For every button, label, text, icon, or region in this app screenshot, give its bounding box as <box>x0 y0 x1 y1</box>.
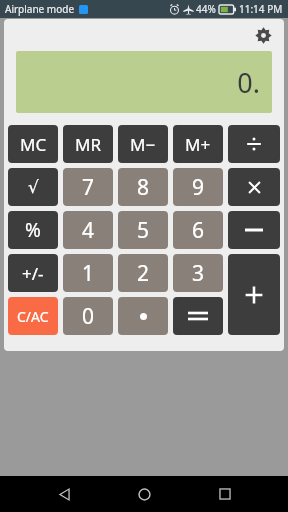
button[interactable]: 2 <box>118 254 168 292</box>
button[interactable]: 3 <box>173 254 223 292</box>
button[interactable]: Subtract <box>228 211 280 249</box>
button[interactable]: 4 <box>63 211 113 249</box>
staticText: 0 <box>82 302 95 331</box>
button[interactable]: Equals <box>173 297 223 335</box>
button[interactable]: 7 <box>63 168 113 206</box>
staticText: 8 <box>137 173 150 202</box>
staticText: √ <box>28 177 39 197</box>
staticText: MC <box>20 133 47 156</box>
button[interactable]: 0 <box>63 297 113 335</box>
staticText: Airplane mode <box>5 2 75 16</box>
button[interactable]: % <box>8 211 58 249</box>
button[interactable]: 9 <box>173 168 223 206</box>
button[interactable]: Recent apps <box>208 477 242 511</box>
staticText: M− <box>130 133 156 156</box>
button[interactable]: 1 <box>63 254 113 292</box>
button[interactable]: C/AC <box>8 297 58 335</box>
staticText: 1 <box>82 259 95 288</box>
staticText: 9 <box>192 173 205 202</box>
staticText: 44% <box>196 2 216 16</box>
button[interactable]: MR <box>63 125 113 163</box>
button[interactable]: Home <box>127 477 161 511</box>
staticText: 4 <box>82 216 95 245</box>
staticText: 3 <box>192 259 205 288</box>
staticText: 2 <box>137 259 150 288</box>
staticText: MR <box>75 133 101 156</box>
staticText: 0. <box>237 64 260 101</box>
button[interactable]: 5 <box>118 211 168 249</box>
button[interactable]: 6 <box>173 211 223 249</box>
button[interactable]: Add <box>228 254 280 335</box>
staticText: M+ <box>185 133 211 156</box>
staticText: 11:14 PM <box>239 2 283 16</box>
button[interactable]: Square root <box>8 168 58 206</box>
button[interactable]: Settings <box>252 24 274 46</box>
staticText: 7 <box>82 173 95 202</box>
staticText: % <box>25 217 41 243</box>
button[interactable]: MC <box>8 125 58 163</box>
button[interactable]: M− <box>118 125 168 163</box>
button[interactable]: Back <box>47 477 81 511</box>
staticText: 6 <box>192 216 205 245</box>
staticText: +/- <box>22 262 44 285</box>
button[interactable]: +/- <box>8 254 58 292</box>
button[interactable]: Divide <box>228 125 280 163</box>
button[interactable]: 8 <box>118 168 168 206</box>
button[interactable]: Decimal point <box>118 297 168 335</box>
button[interactable]: M+ <box>173 125 223 163</box>
staticText: 5 <box>137 216 150 245</box>
staticText: C/AC <box>17 307 49 326</box>
button[interactable]: Multiply <box>228 168 280 206</box>
